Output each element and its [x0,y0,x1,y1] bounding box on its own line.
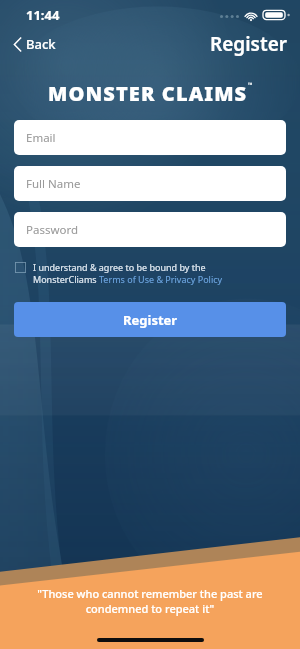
button[interactable]: Full Name [14,166,286,201]
staticText: "Those who cannot remember the past are … [16,586,284,616]
button[interactable]: I understand & agree to be bound by the [0,259,300,287]
staticText: Register [123,311,178,329]
staticText: Password [26,222,79,238]
staticText: Email [26,130,56,146]
staticText: MONSTER CLAIMS [48,80,248,107]
staticText: 11:44 [26,6,60,24]
button[interactable]: Back [0,31,64,57]
staticText: Full Name [26,176,81,192]
staticText: ™ [248,81,253,89]
staticText: Register [210,31,288,57]
staticText: MonsterCliams [33,273,99,285]
staticText: I understand & agree to be bound by the [33,261,206,273]
button[interactable]: Register [14,302,286,337]
staticText: Back [26,35,56,53]
button[interactable]: Terms of Use & Privacy Policy [99,273,223,285]
button[interactable]: Password [14,212,286,247]
button[interactable]: Email [14,120,286,155]
button[interactable] [15,262,26,273]
